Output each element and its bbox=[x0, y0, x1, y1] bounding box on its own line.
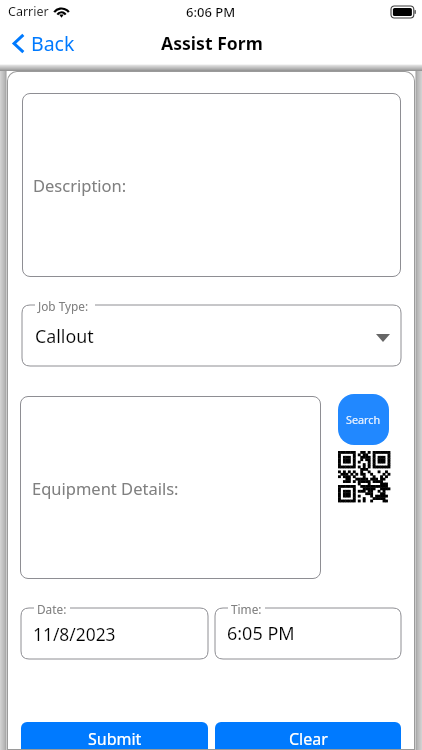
staticText: Job Type: bbox=[38, 298, 89, 314]
button[interactable]: Equipment Details: bbox=[20, 396, 321, 579]
staticText: Clear bbox=[289, 728, 328, 750]
staticText: Description: bbox=[33, 174, 127, 196]
staticText: Search bbox=[346, 412, 381, 427]
button[interactable]: Back bbox=[0, 26, 83, 61]
button[interactable]: Search bbox=[338, 394, 389, 445]
staticText: Assist Form bbox=[161, 31, 263, 55]
button[interactable]: Submit bbox=[21, 722, 208, 750]
button[interactable]: Clear bbox=[215, 722, 401, 750]
staticText: Submit bbox=[88, 728, 142, 750]
staticText: Callout bbox=[35, 324, 94, 348]
staticText: Carrier bbox=[8, 3, 49, 20]
staticText: Time: bbox=[231, 601, 262, 617]
staticText: 6:06 PM bbox=[186, 3, 236, 21]
staticText: Equipment Details: bbox=[32, 477, 179, 499]
staticText: Date: bbox=[37, 601, 67, 617]
staticText: 6:05 PM bbox=[227, 621, 295, 646]
staticText: 11/8/2023 bbox=[33, 622, 116, 646]
staticText: Back bbox=[31, 30, 75, 57]
button[interactable]: Description: bbox=[22, 93, 401, 277]
